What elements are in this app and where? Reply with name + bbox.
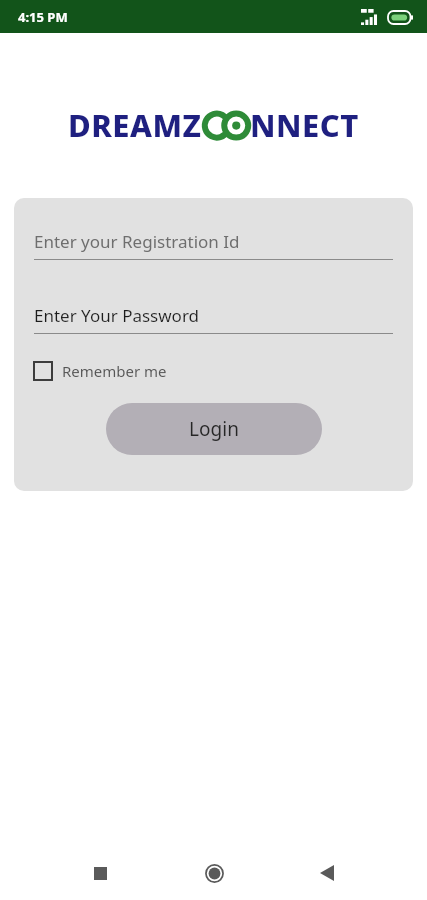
staticText: Remember me — [62, 361, 167, 381]
button[interactable]: Back — [305, 851, 349, 895]
staticText: DREAMZ — [68, 104, 202, 146]
button[interactable]: Login — [106, 403, 322, 455]
button[interactable]: Enter your Registration Id — [34, 230, 393, 260]
button[interactable]: Remember me — [34, 361, 167, 381]
staticText: Enter your Registration Id — [34, 230, 240, 253]
staticText: Login — [189, 416, 239, 442]
staticText: Enter Your Password — [34, 304, 200, 327]
button[interactable]: Enter Your Password — [34, 304, 393, 334]
button[interactable]: Home — [192, 851, 236, 895]
staticText: 4:15 PM — [18, 8, 68, 26]
button[interactable]: Recent apps — [78, 851, 122, 895]
staticText: NNECT — [250, 104, 359, 146]
